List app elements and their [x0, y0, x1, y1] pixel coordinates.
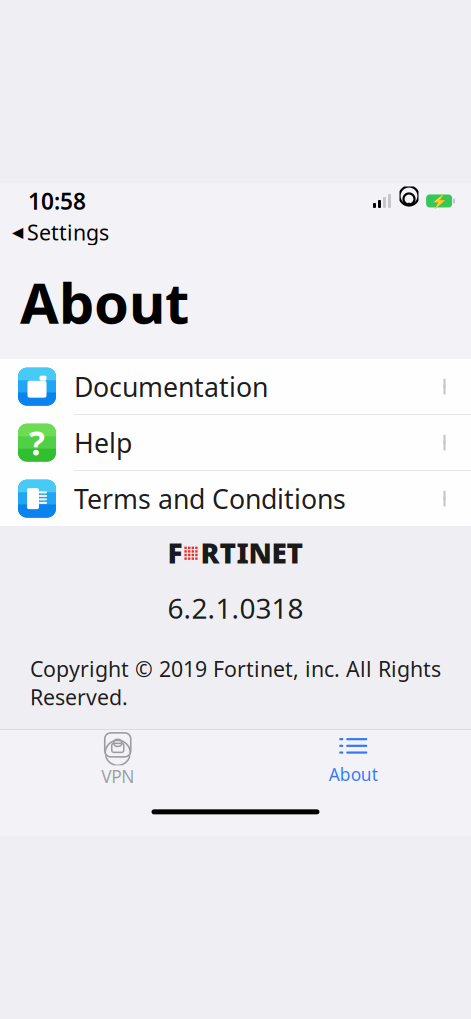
staticText: ◀ — [12, 224, 23, 240]
button[interactable]: ◀ — [0, 216, 109, 248]
staticText: ⚡ — [431, 193, 448, 209]
button[interactable]: About — [235, 726, 471, 792]
staticText: About — [329, 763, 378, 786]
button[interactable]: ? — [0, 415, 471, 471]
staticText: Copyright © 2019 Fortinet, inc. All Righ… — [30, 654, 441, 711]
staticText: RTINET — [201, 534, 304, 571]
staticText: 10:58 — [28, 186, 86, 216]
button[interactable]: VPN — [0, 724, 235, 794]
staticText: F — [167, 534, 182, 571]
staticText: Documentation — [74, 369, 268, 404]
button[interactable]: Terms and Conditions — [0, 471, 471, 526]
button[interactable]: Documentation — [0, 359, 471, 415]
staticText: 6.2.1.0318 — [167, 589, 303, 626]
staticText: ? — [29, 420, 45, 465]
staticText: Help — [74, 425, 132, 460]
staticText: Settings — [27, 218, 109, 246]
staticText: Terms and Conditions — [74, 481, 346, 516]
staticText: VPN — [101, 765, 134, 788]
staticText: About — [20, 265, 189, 339]
